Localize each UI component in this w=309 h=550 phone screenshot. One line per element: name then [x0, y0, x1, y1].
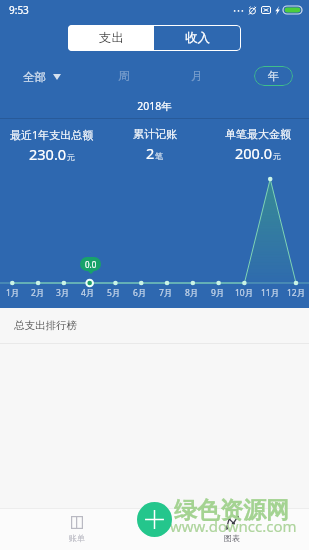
staticText: 全部	[23, 70, 46, 84]
staticText: 11月	[261, 287, 280, 299]
staticText: 3月	[56, 287, 70, 299]
staticText: 4月	[81, 287, 95, 299]
staticText: 元	[67, 152, 75, 162]
button[interactable]: 全部	[23, 67, 61, 87]
staticText: 累计记账	[133, 127, 177, 141]
staticText: 收入	[185, 30, 210, 46]
staticText: 2018年	[0, 99, 309, 113]
button[interactable]: 图表	[154, 509, 309, 550]
staticText: 5月	[107, 287, 121, 299]
staticText: 月	[191, 69, 203, 83]
staticText: 笔	[155, 151, 163, 161]
staticText: 图表	[224, 533, 240, 543]
staticText: 1月	[6, 287, 20, 299]
button[interactable]: 年	[254, 66, 293, 86]
staticText: 9月	[211, 287, 225, 299]
staticText: 0.0	[85, 259, 97, 270]
button[interactable]: Add record	[137, 502, 172, 537]
staticText: 8月	[185, 287, 199, 299]
staticText: 9:53	[9, 3, 29, 17]
staticText: 最近1年支出总额	[10, 127, 94, 142]
button[interactable]: 支出	[68, 25, 154, 51]
staticText: 230.0	[29, 144, 67, 164]
staticText: 支出	[99, 30, 124, 46]
staticText: 周	[118, 69, 130, 83]
button[interactable]: 收入	[154, 25, 241, 51]
staticText: 年	[268, 69, 280, 83]
button[interactable]: 账单	[0, 509, 154, 550]
staticText: 单笔最大金额	[225, 127, 291, 141]
staticText: 账单	[69, 533, 85, 543]
staticText: www.downcc.com	[170, 516, 297, 536]
button[interactable]: 月	[179, 66, 215, 86]
staticText: 12月	[287, 287, 306, 299]
staticText: 200.0	[235, 143, 273, 163]
staticText: 2	[146, 143, 155, 163]
staticText: 2月	[31, 287, 45, 299]
staticText: 10月	[235, 287, 254, 299]
staticText: 元	[273, 151, 281, 161]
staticText: 6月	[133, 287, 147, 299]
staticText: 7月	[159, 287, 173, 299]
staticText: 总支出排行榜	[14, 319, 77, 332]
button[interactable]: 周	[106, 66, 142, 86]
staticText: 绿色资源网	[174, 496, 289, 525]
